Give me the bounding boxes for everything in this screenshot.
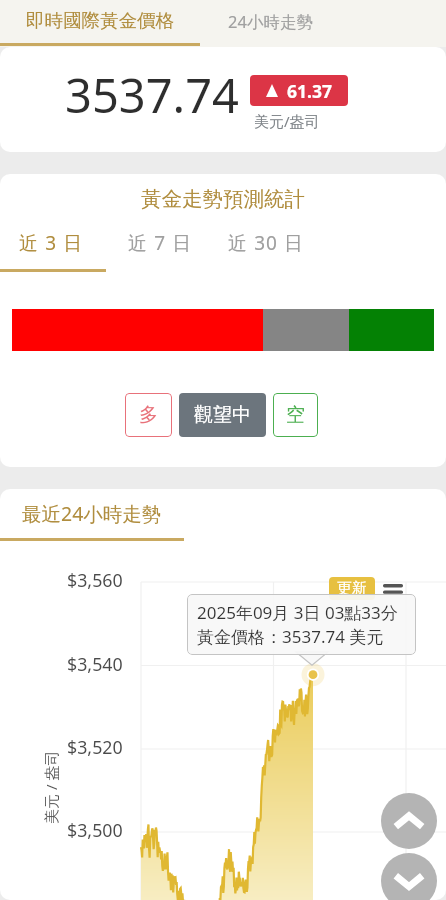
staticText: 近 3 日 xyxy=(19,230,84,256)
button[interactable]: 近 30 日 xyxy=(226,230,306,256)
button[interactable]: 近 7 日 xyxy=(120,230,200,256)
button[interactable]: Scroll up xyxy=(381,793,437,849)
button[interactable]: 即時國際黃金價格 xyxy=(0,0,200,40)
staticText: 多 xyxy=(139,403,158,427)
button[interactable]: 更新 xyxy=(329,577,375,600)
staticText: 空 xyxy=(286,403,305,427)
staticText: 2025年09月 3日 03點33分 xyxy=(197,601,398,624)
staticText: 近 7 日 xyxy=(128,230,193,256)
button[interactable]: 觀望中 xyxy=(179,393,266,437)
staticText: 美元 / 盎司 xyxy=(41,750,61,824)
button[interactable]: 空 xyxy=(273,393,318,437)
staticText: 美元/盎司 xyxy=(254,111,320,131)
staticText: $3,540 xyxy=(67,652,123,676)
staticText: 近 30 日 xyxy=(228,230,305,256)
staticText: 61.37 xyxy=(287,79,332,103)
staticText: $3,500 xyxy=(67,818,123,842)
button[interactable]: 近 3 日 xyxy=(11,230,91,256)
button[interactable]: 多 xyxy=(125,393,172,437)
staticText: 24小時走勢 xyxy=(228,10,313,33)
staticText: 觀望中 xyxy=(194,403,251,427)
staticText: 黃金走勢預測統計 xyxy=(141,186,305,212)
staticText: 更新 xyxy=(337,579,367,598)
staticText: 黃金價格：3537.74 美元 xyxy=(197,625,384,648)
staticText: $3,560 xyxy=(67,568,123,592)
staticText: $3,520 xyxy=(67,735,123,759)
staticText: 3537.74 xyxy=(65,63,239,127)
button[interactable]: Menu xyxy=(379,577,407,600)
staticText: 即時國際黃金價格 xyxy=(26,9,174,32)
button[interactable]: 24小時走勢 xyxy=(200,0,340,42)
button[interactable]: 61.37 xyxy=(250,75,348,106)
staticText: 最近24小時走勢 xyxy=(22,500,162,527)
button[interactable]: Scroll down xyxy=(381,853,437,900)
